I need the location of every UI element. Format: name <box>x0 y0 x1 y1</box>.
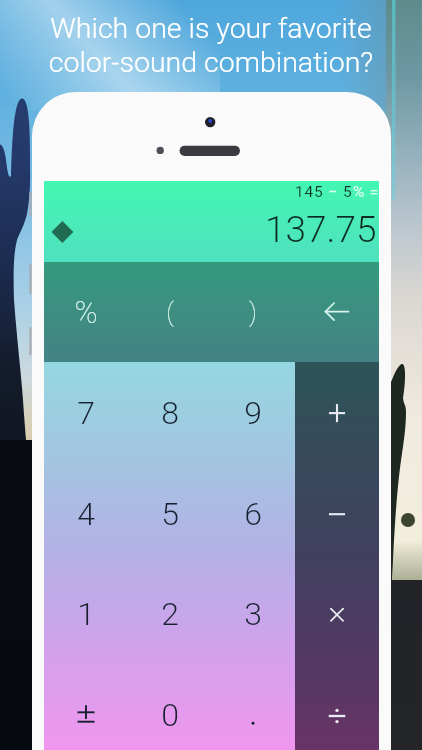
button[interactable]: 9 <box>211 362 295 463</box>
button[interactable]: ( <box>128 262 212 362</box>
staticText: 1 <box>77 595 95 633</box>
button[interactable]: 1 <box>44 563 128 664</box>
staticText: ( <box>166 297 174 327</box>
button[interactable]: Subtract <box>295 463 379 564</box>
staticText: ) <box>249 297 257 327</box>
button[interactable]: Add <box>295 362 379 463</box>
staticText: 0 <box>161 696 179 734</box>
staticText: 6 <box>244 495 262 533</box>
staticText: % = <box>353 183 379 201</box>
button[interactable]: Plus minus <box>44 664 128 750</box>
staticText: 5 <box>161 495 179 533</box>
button[interactable]: 5 <box>128 463 212 564</box>
button[interactable]: ) <box>211 262 295 362</box>
staticText: 4 <box>77 495 95 533</box>
staticText: 145 <box>295 183 324 201</box>
button[interactable]: Decimal point <box>211 664 295 750</box>
button[interactable]: 3 <box>211 563 295 664</box>
button[interactable]: Backspace <box>295 262 379 362</box>
button[interactable]: 7 <box>44 362 128 463</box>
button[interactable]: % <box>44 262 128 362</box>
staticText: 137.75 <box>265 208 377 251</box>
staticText: 8 <box>161 394 179 432</box>
button[interactable]: 0 <box>128 664 212 750</box>
button[interactable]: 8 <box>128 362 212 463</box>
staticText: 9 <box>244 394 262 432</box>
staticText: 7 <box>77 394 95 432</box>
staticText: 3 <box>244 595 262 633</box>
button[interactable]: Multiply <box>295 563 379 664</box>
button[interactable]: 2 <box>128 563 212 664</box>
button[interactable]: 4 <box>44 463 128 564</box>
staticText: 2 <box>161 595 179 633</box>
button[interactable]: Divide <box>295 664 379 750</box>
staticText: % <box>74 294 98 330</box>
staticText: 5 <box>343 183 353 201</box>
button[interactable]: 6 <box>211 463 295 564</box>
staticText: − <box>324 183 343 201</box>
staticText: Which one is your favorite color-sound c… <box>0 12 422 78</box>
